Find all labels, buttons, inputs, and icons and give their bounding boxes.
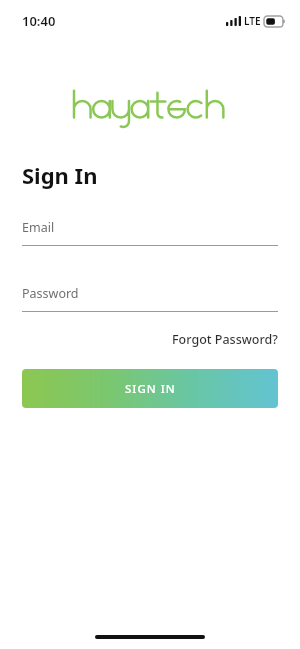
button[interactable]: SIGN IN (22, 369, 278, 408)
staticText: Sign In (22, 160, 98, 190)
staticText: SIGN IN (125, 381, 176, 397)
button[interactable]: Email (22, 219, 278, 246)
button[interactable]: Forgot Password? (172, 328, 278, 351)
other: hayatech logo (74, 91, 226, 124)
staticText: Forgot Password? (172, 331, 278, 348)
staticText: Password (22, 285, 79, 302)
button[interactable]: Password (22, 285, 278, 312)
staticText: 10:40 (22, 12, 56, 30)
staticText: Email (22, 219, 55, 236)
staticText: LTE (244, 14, 261, 28)
